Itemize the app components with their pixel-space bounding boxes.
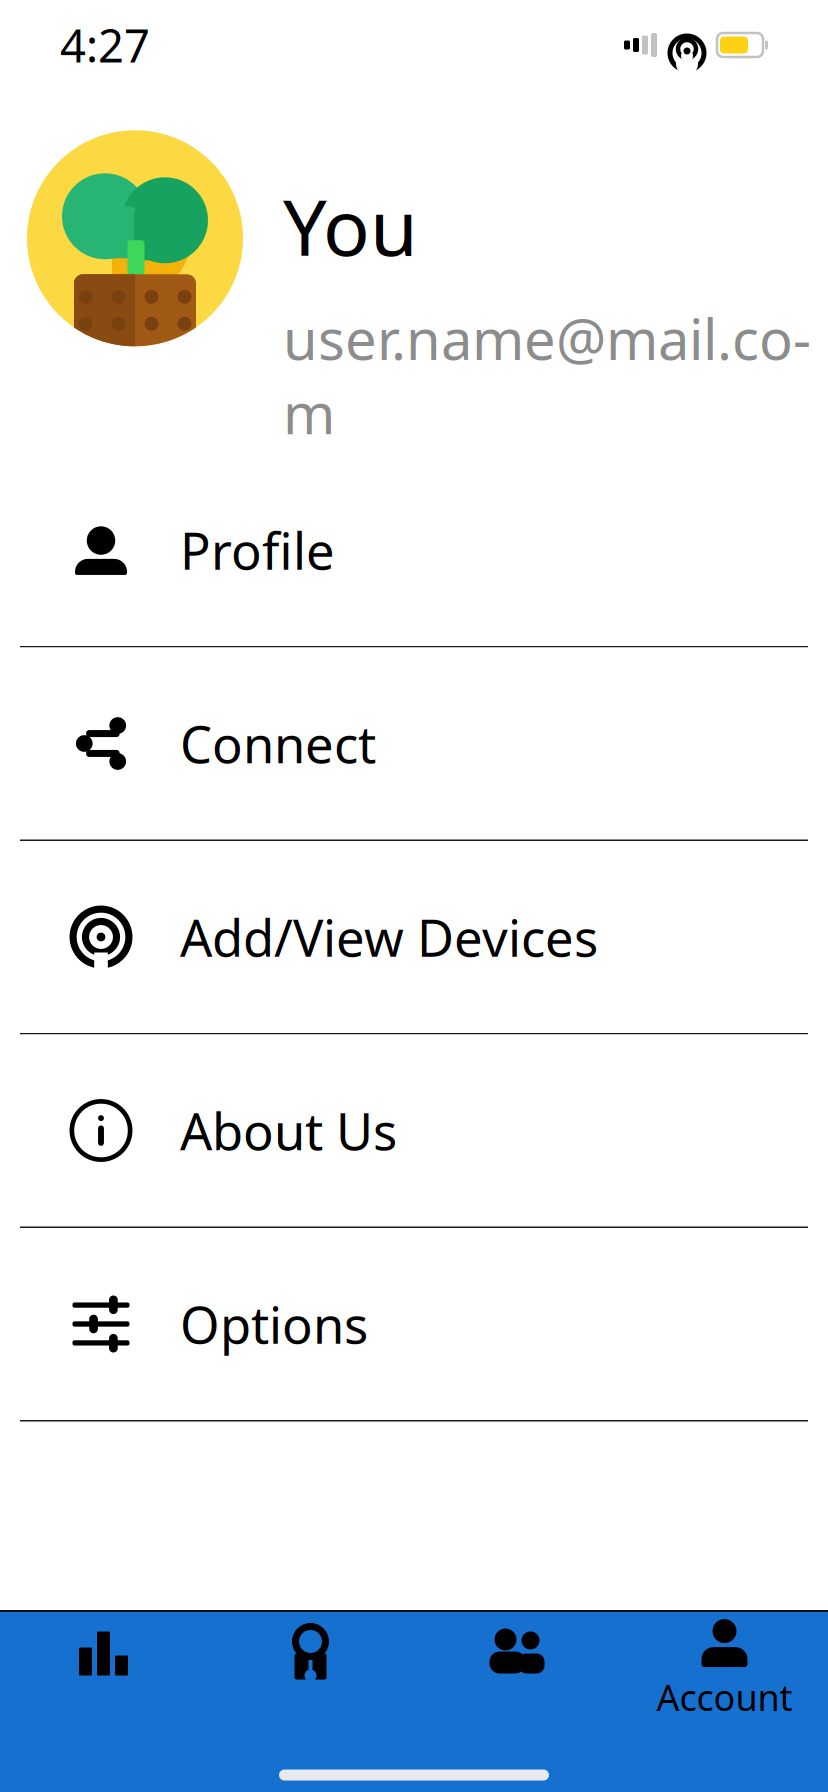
button[interactable]: Account bbox=[621, 1612, 828, 1722]
staticText: About Us bbox=[180, 1097, 397, 1164]
staticText: Profile bbox=[180, 516, 335, 584]
button[interactable]: Tab bbox=[414, 1612, 621, 1722]
button[interactable]: Add/View Devices bbox=[0, 841, 828, 1034]
staticText: You bbox=[283, 174, 418, 277]
button[interactable]: Connect bbox=[0, 647, 828, 841]
staticText: Account bbox=[656, 1673, 792, 1721]
button[interactable]: Profile bbox=[0, 454, 828, 647]
button[interactable]: Tab bbox=[207, 1612, 414, 1722]
staticText: 4:27 bbox=[60, 15, 150, 75]
staticText: Add/View Devices bbox=[180, 903, 598, 971]
button[interactable]: Tab bbox=[0, 1612, 207, 1722]
button[interactable]: About Us bbox=[0, 1034, 828, 1228]
staticText: Options bbox=[180, 1290, 368, 1358]
staticText: Connect bbox=[180, 710, 376, 777]
button[interactable]: Options bbox=[0, 1228, 828, 1421]
staticText: user.name@mail.com bbox=[283, 301, 811, 450]
